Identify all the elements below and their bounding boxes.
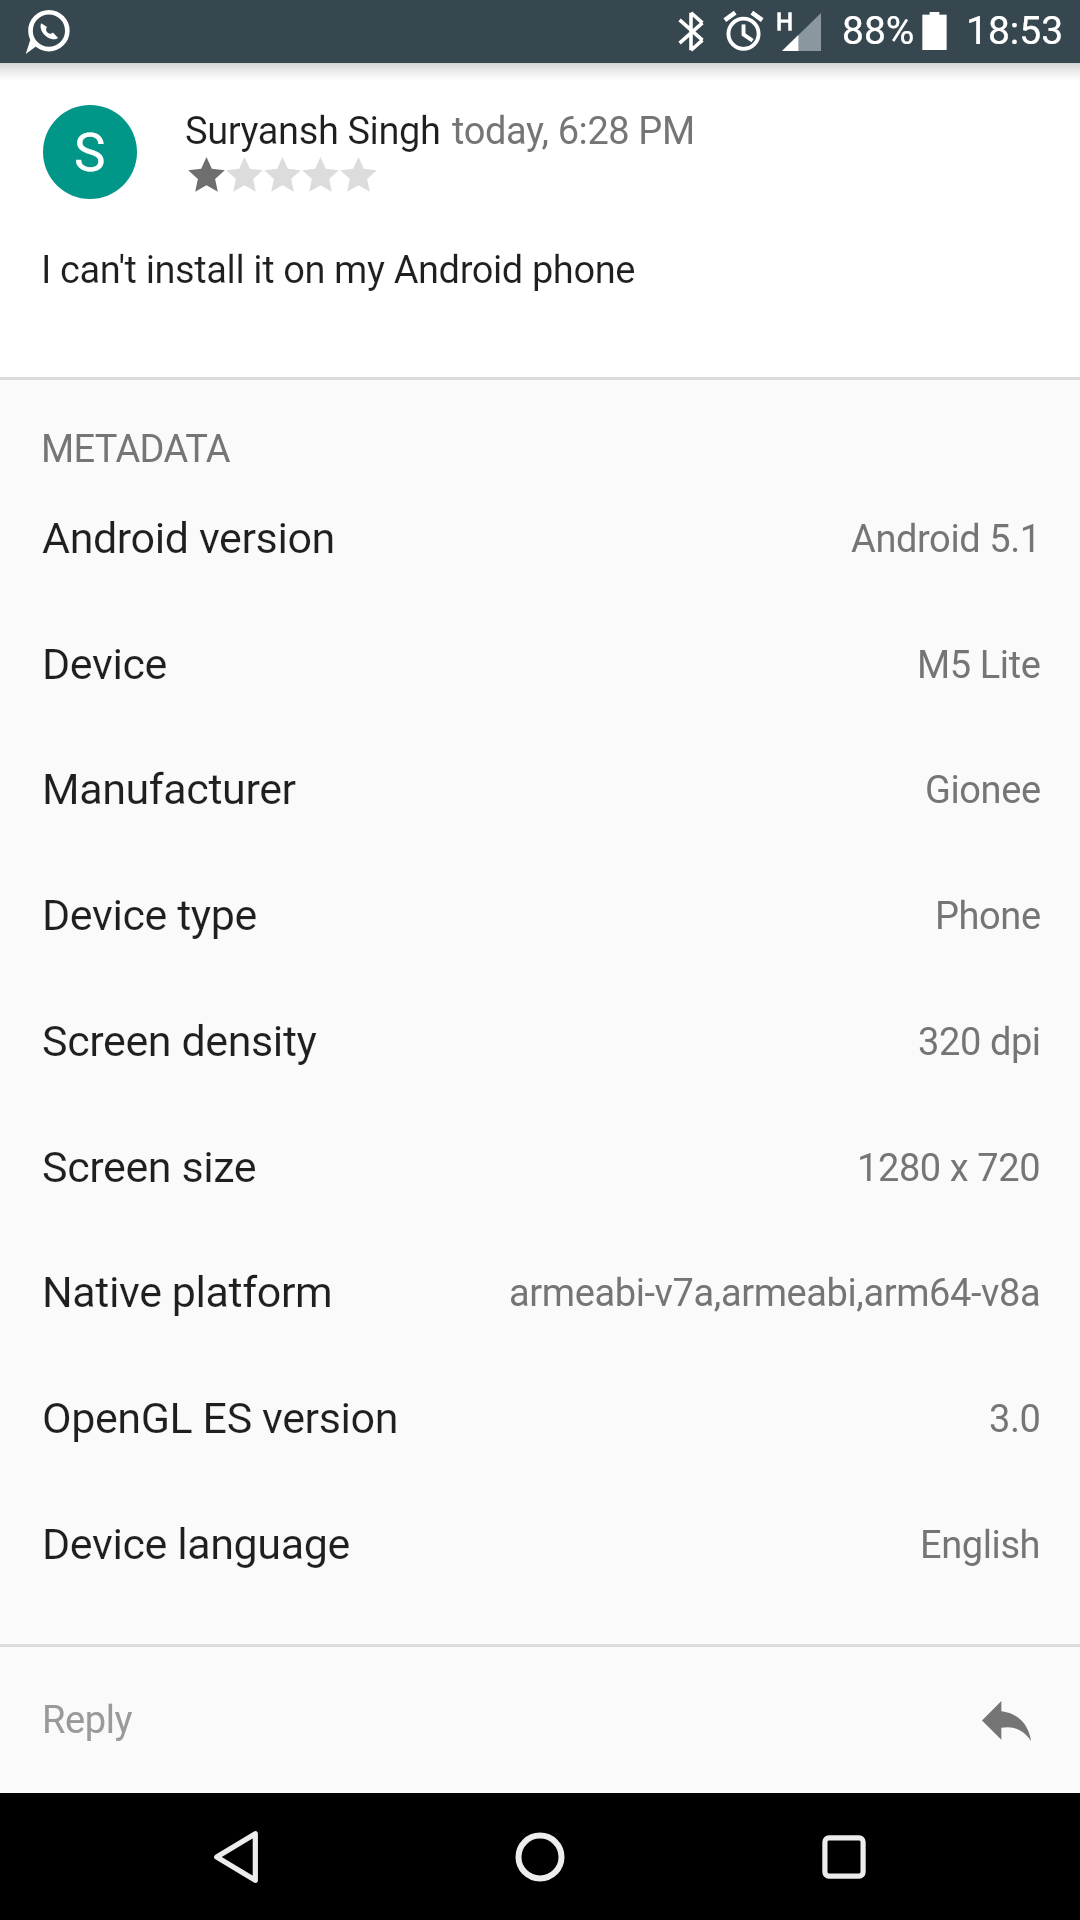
staticText: Screen density [42,1016,317,1066]
button[interactable]: S [43,105,137,199]
staticText: armeabi-v7a,armeabi,arm64-v8a [509,1271,1041,1316]
staticText: Device type [42,890,257,940]
button[interactable]: Screen density [0,985,1080,1111]
button[interactable]: Device type [0,859,1080,985]
button[interactable]: Home [460,1793,620,1920]
staticText: Manufacturer [42,764,296,814]
button[interactable]: Native platform [0,1236,1080,1362]
staticText: H [776,8,794,36]
button[interactable]: OpenGL ES version [0,1362,1080,1488]
staticText: Native platform [42,1267,333,1317]
staticText: OpenGL ES version [42,1393,399,1443]
staticText: Gionee [925,768,1041,813]
staticText: Device language [42,1519,350,1569]
staticText: Android 5.1 [851,517,1041,562]
staticText: 1280 x 720 [857,1146,1041,1191]
button[interactable] [0,81,1080,377]
button[interactable]: Manufacturer [0,733,1080,859]
button[interactable]: Device language [0,1488,1080,1614]
button[interactable]: Send reply [958,1677,1054,1765]
staticText: 320 dpi [918,1020,1041,1065]
staticText: Android version [42,513,335,563]
button[interactable]: Back [156,1793,316,1920]
staticText: 3.0 [989,1397,1041,1442]
button[interactable]: Android version [0,482,1080,608]
staticText: Reply [42,1698,133,1743]
button[interactable]: Recent apps [764,1793,924,1920]
staticText: METADATA [41,427,230,472]
staticText: English [920,1523,1041,1568]
staticText: 18:53 [966,8,1064,54]
staticText: I can't install it on my Android phone [41,248,635,293]
other: WhatsApp [25,10,71,56]
staticText: Suryansh Singh [185,109,441,154]
staticText: M5 Lite [917,643,1041,688]
staticText: today, 6:28 PM [452,109,695,154]
staticText: Screen size [42,1142,257,1192]
staticText: 88% [842,8,915,54]
staticText: Device [42,639,167,689]
button[interactable]: Device [0,608,1080,734]
staticText: Phone [935,894,1041,939]
button[interactable]: Reply [0,1647,1080,1793]
button[interactable]: Screen size [0,1111,1080,1237]
staticText: S [74,122,106,184]
